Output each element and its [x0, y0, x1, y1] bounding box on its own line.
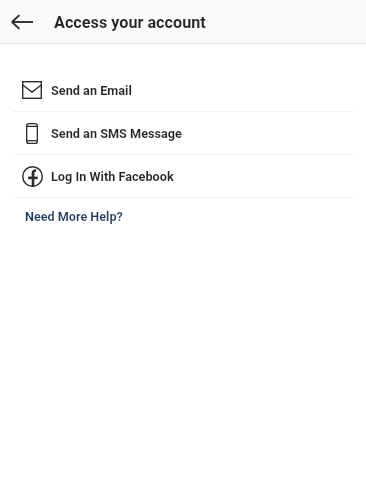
staticText: Send an Email: [51, 83, 132, 98]
button[interactable]: Back: [0, 0, 43, 44]
button[interactable]: Need More Help?: [0, 198, 366, 234]
staticText: Access your account: [54, 13, 206, 32]
button[interactable]: Send an Email: [0, 69, 366, 111]
button[interactable]: Log In With Facebook: [0, 155, 366, 197]
staticText: Log In With Facebook: [51, 169, 174, 184]
staticText: Send an SMS Message: [51, 126, 182, 141]
button[interactable]: Send an SMS Message: [0, 112, 366, 154]
staticText: Need More Help?: [25, 209, 123, 224]
